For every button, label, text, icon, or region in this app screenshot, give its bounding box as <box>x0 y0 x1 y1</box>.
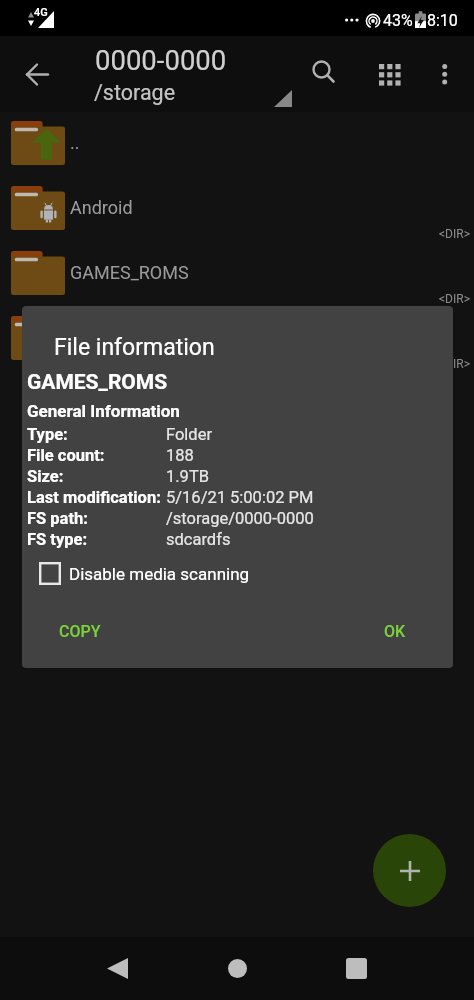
button[interactable]: Navigate up <box>13 50 62 99</box>
staticText: COPY <box>59 622 101 641</box>
button[interactable]: Back <box>93 944 141 992</box>
staticText: 188 <box>166 446 194 465</box>
staticText: Disable media scanning <box>69 564 250 584</box>
button[interactable]: <DIR> <box>0 307 474 372</box>
staticText: FS path: <box>27 509 88 528</box>
staticText: 8:10 <box>427 11 458 30</box>
staticText: File count: <box>27 446 105 465</box>
staticText: Android <box>70 197 133 218</box>
staticText: GAMES_ROMS <box>27 370 168 395</box>
button[interactable]: Android <box>0 177 474 242</box>
button[interactable]: More options <box>421 46 469 94</box>
button[interactable]: Disable media scanning <box>39 562 250 585</box>
staticText: <DIR> <box>439 292 470 306</box>
button[interactable]: OK <box>384 622 406 641</box>
staticText: sdcardfs <box>166 530 231 549</box>
button[interactable]: Search <box>298 47 346 95</box>
staticText: General Information <box>27 401 180 421</box>
staticText: .. <box>70 132 80 153</box>
staticText: File information <box>54 334 215 361</box>
staticText: 0000-0000 <box>95 44 227 76</box>
button[interactable]: .. <box>0 112 474 177</box>
button[interactable]: Home <box>213 944 261 992</box>
staticText: <DIR> <box>439 227 470 241</box>
staticText: 43% <box>383 11 413 30</box>
staticText: OK <box>384 622 406 641</box>
button[interactable]: COPY <box>59 622 101 641</box>
staticText: Type: <box>27 425 68 444</box>
staticText: Folder <box>166 425 213 444</box>
button[interactable]: Add <box>373 834 446 907</box>
staticText: GAMES_ROMS <box>70 262 189 283</box>
staticText: Last modification: <box>27 488 161 507</box>
staticText: 5/16/21 5:00:02 PM <box>166 488 314 507</box>
staticText: /storage <box>94 80 176 105</box>
button[interactable]: Recents <box>332 944 380 992</box>
staticText: 4G <box>34 6 48 19</box>
staticText: FS type: <box>27 530 88 549</box>
button[interactable]: GAMES_ROMS <box>0 242 474 307</box>
staticText: 1.9TB <box>166 467 210 486</box>
button[interactable]: Grid view <box>365 46 413 94</box>
staticText: Size: <box>27 467 64 486</box>
staticText: <DIR> <box>439 357 470 371</box>
staticText: /storage/0000-0000 <box>166 509 314 528</box>
